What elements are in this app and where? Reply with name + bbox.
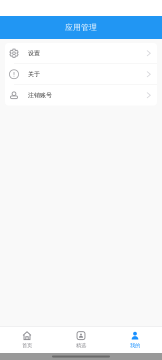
button[interactable]: 精选 <box>54 327 108 353</box>
button[interactable]: 首页 <box>0 327 54 353</box>
staticText: 关于 <box>28 70 40 78</box>
staticText: 设置 <box>28 49 40 57</box>
button[interactable]: 关于 <box>5 64 157 85</box>
button[interactable]: 设置 <box>5 43 157 64</box>
staticText: 精选 <box>76 342 86 349</box>
button[interactable]: 我的 <box>108 327 162 353</box>
staticText: 首页 <box>22 342 32 349</box>
staticText: 应用管理 <box>65 22 97 32</box>
staticText: 我的 <box>130 342 140 349</box>
button[interactable]: 注销账号 <box>5 85 157 105</box>
staticText: 注销账号 <box>28 91 52 99</box>
